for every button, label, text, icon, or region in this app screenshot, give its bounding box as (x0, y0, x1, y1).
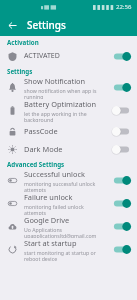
staticText: Settings (27, 18, 66, 32)
button[interactable]: Back (4, 17, 20, 33)
button[interactable]: Dark mode (0, 140, 137, 158)
staticText: Start at startup (24, 238, 77, 248)
staticText: Dark Mode (24, 144, 63, 154)
staticText: PassCode (24, 126, 58, 136)
other: Failure unlock (8, 199, 17, 208)
staticText: monitoring successful unlock attempts (24, 180, 96, 192)
button[interactable] (105, 140, 137, 158)
staticText: show notification when app is running (24, 87, 97, 99)
staticText: 22:56 (116, 3, 132, 11)
button[interactable] (105, 192, 137, 215)
button[interactable]: Lock (0, 122, 137, 140)
staticText: Failure unlock (24, 192, 73, 202)
button[interactable] (105, 99, 137, 122)
staticText: Successful unlock (24, 169, 85, 179)
staticText: Battery Optimization (24, 99, 97, 109)
other: Shield (8, 52, 17, 61)
other: Successful unlock (8, 176, 17, 185)
button[interactable] (105, 122, 137, 140)
button[interactable] (105, 47, 137, 65)
staticText: let the app working in the background (24, 110, 87, 122)
button[interactable]: Successful unlock (0, 169, 137, 192)
other: Google Drive (8, 222, 17, 231)
button[interactable] (105, 215, 137, 238)
button[interactable]: Notification (0, 76, 137, 99)
button[interactable]: Start at startup (0, 238, 137, 261)
other: Dark mode (8, 145, 17, 154)
button[interactable]: Failure unlock (0, 192, 137, 215)
other: Lock (8, 127, 17, 136)
button[interactable] (105, 169, 137, 192)
other: Battery (8, 106, 17, 115)
button[interactable]: Google Drive (0, 215, 137, 238)
other: Start at startup (8, 245, 17, 254)
staticText: monitoring failed unlock attempts (24, 203, 84, 215)
staticText: Google Drive (24, 215, 70, 225)
staticText: Advanced Settings (7, 160, 65, 168)
staticText: Uo Applications upapplicationsltd@gmail.… (24, 226, 97, 238)
staticText: Activation (7, 38, 39, 46)
staticText: Settings (7, 67, 33, 75)
staticText: ACTIVATED (24, 51, 60, 61)
button[interactable]: Battery (0, 99, 137, 122)
other: Notification (8, 83, 17, 92)
staticText: start monitoring at startup or reboot de… (24, 249, 96, 261)
button[interactable] (105, 238, 137, 261)
button[interactable]: Shield (0, 47, 137, 65)
staticText: Show Notification (24, 76, 86, 86)
button[interactable] (105, 76, 137, 99)
